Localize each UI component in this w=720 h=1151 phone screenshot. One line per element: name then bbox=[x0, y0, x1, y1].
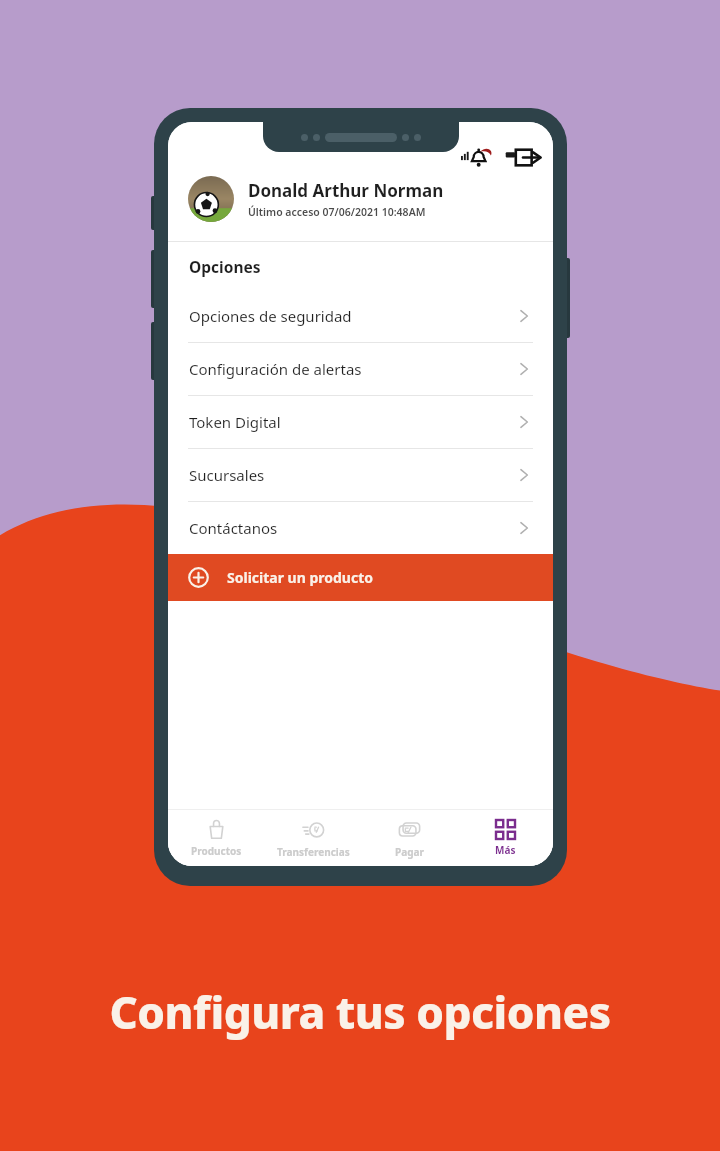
staticText: Contáctanos bbox=[189, 518, 517, 538]
staticText: Configura tus opciones bbox=[0, 982, 720, 1042]
staticText: Más bbox=[495, 843, 516, 857]
staticText: Transferencias bbox=[277, 845, 350, 859]
staticText: Productos bbox=[191, 844, 242, 858]
staticText: Sucursales bbox=[189, 465, 517, 485]
button[interactable]: Opciones de seguridad bbox=[168, 290, 553, 342]
button[interactable]: Productos bbox=[168, 810, 265, 866]
button[interactable]: Contáctanos bbox=[168, 502, 553, 554]
staticText: Configuración de alertas bbox=[189, 359, 517, 379]
button[interactable]: Solicitar un producto bbox=[168, 554, 553, 601]
button[interactable]: Transferencias bbox=[265, 810, 361, 866]
staticText: Opciones bbox=[189, 256, 261, 277]
staticText: Pagar bbox=[395, 845, 424, 859]
staticText: Último acceso 07/06/2021 10:48AM bbox=[248, 205, 426, 219]
staticText: Opciones de seguridad bbox=[189, 306, 517, 326]
button[interactable]: Más bbox=[457, 810, 553, 866]
staticText: Token Digital bbox=[189, 412, 517, 432]
button[interactable]: Notificaciones bbox=[461, 144, 495, 170]
staticText: Solicitar un producto bbox=[227, 568, 374, 587]
button[interactable]: Cerrar sesión bbox=[505, 144, 541, 170]
button[interactable]: Sucursales bbox=[168, 449, 553, 501]
button[interactable]: Pagar bbox=[361, 810, 457, 866]
button[interactable]: Configuración de alertas bbox=[168, 343, 553, 395]
staticText: Donald Arthur Norman bbox=[248, 179, 444, 202]
button[interactable]: Token Digital bbox=[168, 396, 553, 448]
